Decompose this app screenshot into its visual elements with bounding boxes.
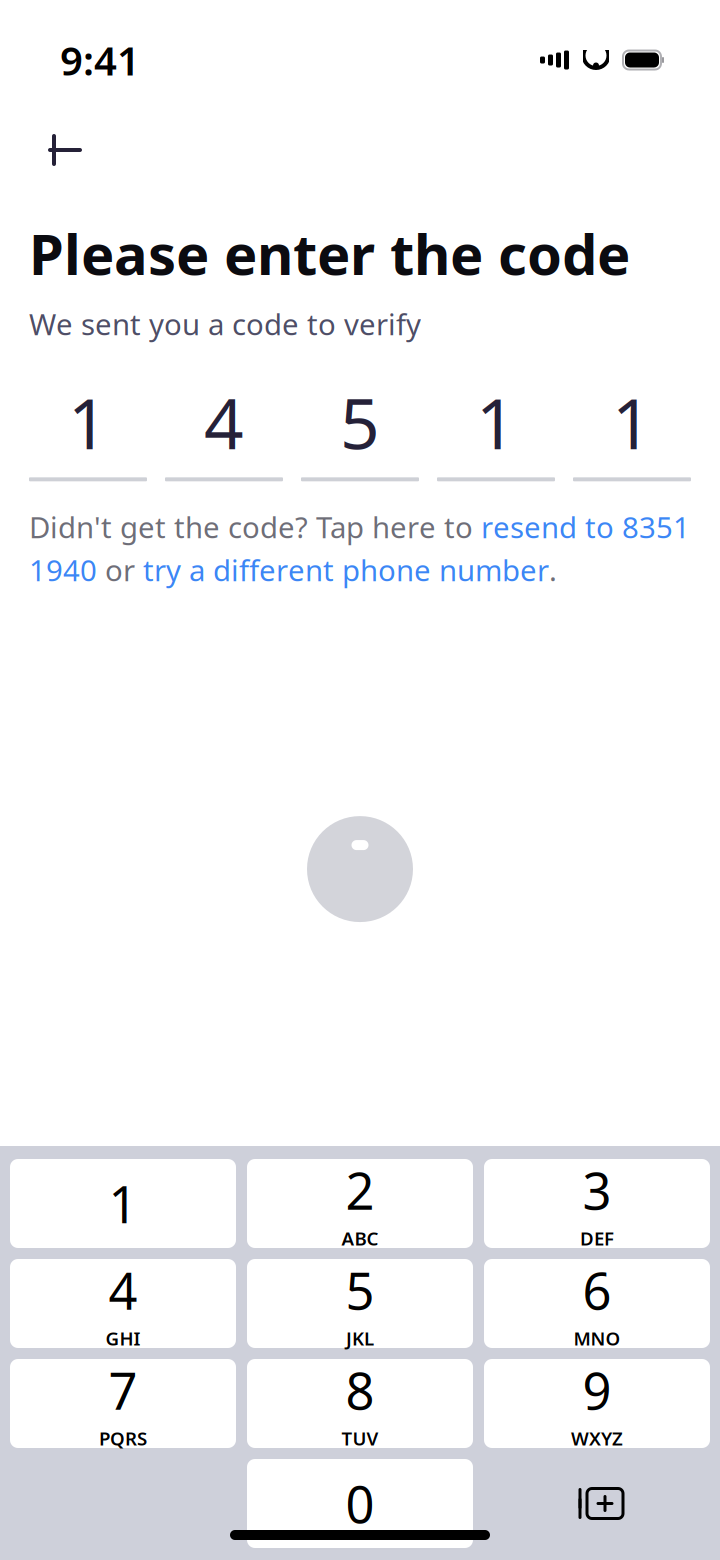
staticText: 4 xyxy=(204,376,244,468)
staticText: Didn't get the code? Tap here to xyxy=(29,507,481,546)
button[interactable]: 2 xyxy=(247,1159,473,1248)
button[interactable]: Back xyxy=(29,122,101,178)
staticText: 5 xyxy=(345,1256,374,1324)
staticText: Please enter the code xyxy=(29,216,630,290)
button[interactable]: 6 xyxy=(484,1259,710,1348)
staticText: PQRS xyxy=(99,1426,147,1450)
button[interactable]: Didn't get the code? Tap here to xyxy=(29,507,691,589)
staticText: GHI xyxy=(105,1326,140,1350)
staticText: 3 xyxy=(582,1156,611,1224)
button[interactable]: 8 xyxy=(247,1359,473,1448)
button[interactable]: 1 xyxy=(437,389,555,481)
button[interactable]: 5 xyxy=(247,1259,473,1348)
staticText: 1940 xyxy=(29,550,97,589)
staticText: ABC xyxy=(341,1226,378,1250)
staticText: try a different phone number xyxy=(143,550,549,589)
staticText: TUV xyxy=(341,1426,378,1450)
staticText: resend to 8351 xyxy=(481,507,690,546)
staticText: 4 xyxy=(108,1256,137,1324)
staticText: WXYZ xyxy=(571,1426,623,1450)
staticText: 2 xyxy=(345,1156,374,1224)
staticText: 6 xyxy=(582,1256,611,1324)
staticText: 1 xyxy=(108,1170,137,1237)
staticText: . xyxy=(549,550,557,589)
staticText: We sent you a code to verify xyxy=(29,304,421,343)
button[interactable]: 5 xyxy=(301,389,419,481)
button[interactable]: 1 xyxy=(29,389,147,481)
button[interactable]: 4 xyxy=(10,1259,236,1348)
staticText: 1 xyxy=(612,376,652,468)
staticText: 8 xyxy=(345,1356,374,1424)
button[interactable]: Avatar xyxy=(307,816,413,922)
staticText: JKL xyxy=(346,1326,374,1350)
button[interactable]: Delete xyxy=(484,1459,710,1548)
staticText: 1 xyxy=(476,376,516,468)
button[interactable]: 9 xyxy=(484,1359,710,1448)
staticText: 9:41 xyxy=(60,33,140,86)
staticText: 1 xyxy=(68,376,108,468)
staticText: MNO xyxy=(573,1326,620,1350)
button[interactable]: 7 xyxy=(10,1359,236,1448)
staticText: 0 xyxy=(345,1470,374,1537)
button[interactable]: 1 xyxy=(573,389,691,481)
staticText: DEF xyxy=(580,1226,614,1250)
staticText: or xyxy=(97,550,143,589)
staticText: 7 xyxy=(108,1356,137,1424)
staticText: 9 xyxy=(582,1356,611,1424)
button[interactable]: 4 xyxy=(165,389,283,481)
button[interactable]: 0 xyxy=(247,1459,473,1548)
staticText: 5 xyxy=(340,376,380,468)
button[interactable]: 1 xyxy=(10,1159,236,1248)
button[interactable]: 3 xyxy=(484,1159,710,1248)
